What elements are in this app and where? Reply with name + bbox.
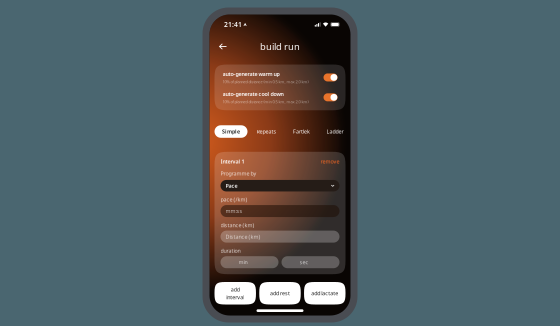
- button[interactable]: Repeats: [249, 125, 284, 138]
- staticText: Interval 1: [220, 158, 244, 165]
- staticText: Ladder: [326, 128, 343, 135]
- staticText: add rest: [270, 290, 290, 297]
- staticText: Distance (km): [225, 233, 260, 240]
- staticText: add lactate: [311, 290, 338, 297]
- button[interactable]: add lactate: [304, 282, 345, 304]
- button[interactable]: add: [214, 282, 256, 304]
- button[interactable]: Toggle auto-generate warm up: [323, 73, 337, 81]
- button[interactable]: Simple: [214, 125, 247, 138]
- button[interactable]: Distance (km): [220, 231, 339, 243]
- staticText: add: [231, 286, 240, 293]
- staticText: Simple: [222, 128, 240, 135]
- staticText: pace (/km): [220, 196, 247, 203]
- staticText: distance (km): [220, 221, 254, 229]
- button[interactable]: Toggle auto-generate cool down: [323, 93, 337, 101]
- staticText: Repeats: [256, 128, 276, 135]
- staticText: duration: [220, 247, 240, 254]
- staticText: Programme by: [220, 170, 256, 177]
- staticText: auto-generate warm up: [222, 70, 279, 78]
- staticText: 10% of planned distance (min 0.5 km, max…: [222, 99, 308, 104]
- staticText: remove: [320, 158, 339, 165]
- button[interactable]: sec: [281, 256, 339, 268]
- staticText: Pace: [225, 182, 237, 189]
- button[interactable]: add rest: [259, 282, 301, 304]
- button[interactable]: Back: [214, 39, 231, 54]
- button[interactable]: Ladder: [319, 125, 351, 138]
- staticText: 10% of planned distance (min 0.5 km, max…: [222, 79, 308, 84]
- button[interactable]: remove: [320, 158, 339, 165]
- staticText: min: [238, 259, 247, 266]
- button[interactable]: Pace: [220, 180, 339, 191]
- staticText: auto-generate cool down: [222, 90, 283, 97]
- staticText: interval: [226, 294, 244, 301]
- button[interactable]: Fartlek: [285, 125, 317, 138]
- staticText: build run: [260, 40, 300, 53]
- button[interactable]: min: [220, 256, 278, 268]
- staticText: Fartlek: [293, 128, 310, 135]
- staticText: 21:41: [224, 20, 242, 29]
- staticText: sec: [299, 259, 308, 266]
- staticText: mm:ss: [225, 207, 242, 215]
- button[interactable]: mm:ss: [220, 205, 339, 217]
